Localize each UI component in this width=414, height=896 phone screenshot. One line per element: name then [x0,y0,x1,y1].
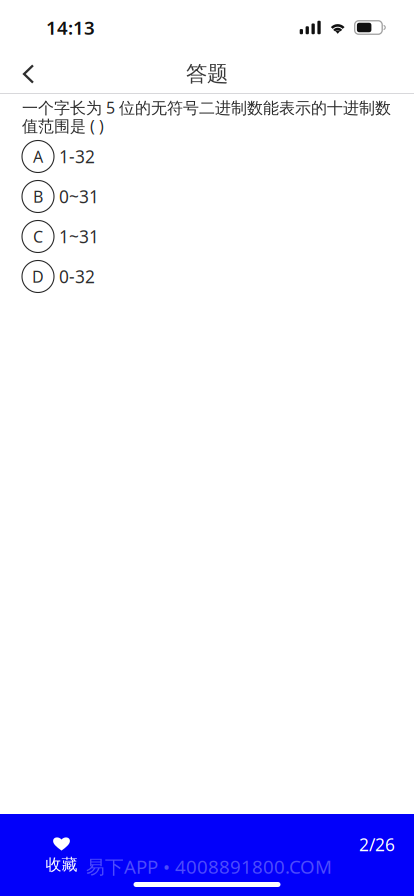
staticText: D [32,266,44,287]
staticText: 1-32 [59,145,95,168]
staticText: 0~31 [59,185,99,208]
button[interactable]: B [0,176,414,216]
staticText: 14:13 [46,15,95,40]
staticText: 2/26 [359,833,395,856]
staticText: 一个字长为 5 位的无符号二进制数能表示的十进制数值范围是 ( ) [22,97,391,136]
staticText: 易下APP • 4008891800.COM [86,854,332,879]
staticText: 收藏 [45,855,77,874]
staticText: 答题 [186,61,228,87]
button[interactable]: C [0,216,414,256]
staticText: 0-32 [59,265,95,288]
staticText: B [33,186,43,207]
staticText: 1~31 [59,225,99,248]
staticText: A [33,146,43,167]
staticText: C [33,226,43,247]
button[interactable]: D [0,256,414,296]
button[interactable]: Back [0,55,57,93]
button[interactable]: A [0,136,414,176]
button[interactable]: 收藏 [0,836,123,882]
